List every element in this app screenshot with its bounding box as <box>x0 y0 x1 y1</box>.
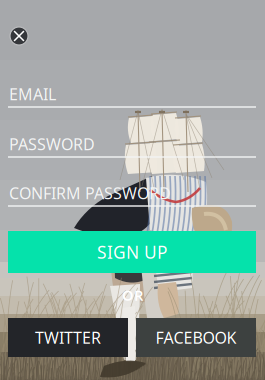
staticText: TWITTER <box>35 327 101 348</box>
button[interactable]: FACEBOOK <box>136 318 256 357</box>
staticText: SIGN UP <box>97 240 167 263</box>
staticText: PASSWORD <box>9 133 95 155</box>
staticText: OR <box>122 285 143 305</box>
button[interactable]: SIGN UP <box>8 231 256 273</box>
staticText: FACEBOOK <box>155 327 236 348</box>
button[interactable]: TWITTER <box>8 318 128 357</box>
staticText: CONFIRM PASSWORD <box>9 182 171 204</box>
button[interactable]: Close <box>1 18 37 54</box>
staticText: EMAIL <box>9 83 56 105</box>
